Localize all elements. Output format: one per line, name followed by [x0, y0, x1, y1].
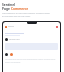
- staticText: All updates from the workspace team arri…: [5, 58, 58, 64]
- staticText: Sentinel: [2, 3, 15, 7]
- staticText: Commerce: [11, 7, 29, 11]
- staticText: The platform in the near reports of ever…: [2, 12, 52, 18]
- button[interactable]: Inbox: [2, 21, 61, 72]
- staticText: Inbox: [8, 25, 14, 28]
- staticText: Page: [2, 7, 11, 11]
- staticText: Grace Kim: [9, 38, 20, 41]
